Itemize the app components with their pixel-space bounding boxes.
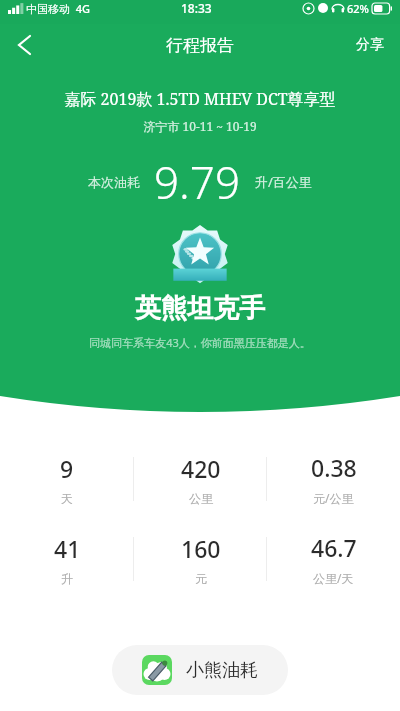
staticText: 英熊坦克手 bbox=[135, 292, 265, 325]
staticText: 公里 bbox=[189, 491, 213, 506]
staticText: 18:33 bbox=[181, 0, 212, 16]
staticText: 0.38 bbox=[311, 452, 357, 483]
staticText: 41 bbox=[54, 533, 81, 564]
staticText: 嘉际 2019款 1.5TD MHEV DCT尊享型 bbox=[64, 88, 336, 110]
staticText: 160 bbox=[181, 533, 221, 564]
staticText: 小熊油耗 bbox=[186, 659, 258, 682]
staticText: 天 bbox=[61, 491, 73, 506]
staticText: 9 bbox=[60, 453, 74, 484]
button[interactable]: 小熊油耗 bbox=[112, 645, 288, 695]
staticText: 420 bbox=[181, 453, 221, 484]
staticText: 升 bbox=[61, 571, 73, 586]
staticText: 元 bbox=[195, 571, 207, 586]
button[interactable]: Back bbox=[0, 24, 48, 66]
staticText: 9.79 bbox=[154, 152, 241, 212]
staticText: 元/公里 bbox=[313, 490, 354, 506]
staticText: 同城同车系车友43人，你前面黑压压都是人。 bbox=[89, 335, 311, 350]
staticText: 62% bbox=[347, 1, 369, 16]
staticText: 46.7 bbox=[311, 532, 357, 563]
staticText: 中国移动 4G bbox=[26, 1, 91, 16]
staticText: 升/百公里 bbox=[255, 173, 312, 191]
button[interactable]: 分享 bbox=[340, 26, 400, 64]
staticText: 分享 bbox=[356, 36, 384, 54]
staticText: 济宁市 10-11 ~ 10-19 bbox=[143, 118, 257, 134]
staticText: 行程报告 bbox=[166, 35, 234, 56]
staticText: 公里/天 bbox=[313, 570, 354, 586]
staticText: 本次油耗 bbox=[88, 174, 140, 190]
